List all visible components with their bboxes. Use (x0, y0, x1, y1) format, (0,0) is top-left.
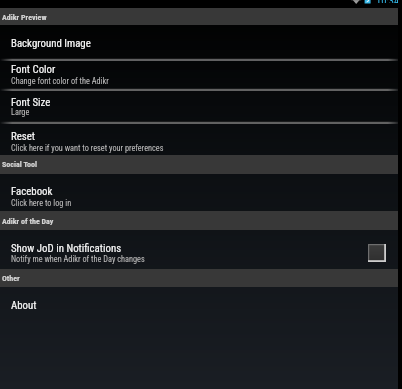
button[interactable] (0, 91, 402, 123)
staticText: About (11, 299, 37, 312)
button[interactable] (0, 174, 402, 211)
button[interactable]: Show Adikr of the Day in notifications (368, 244, 386, 262)
staticText: Social Tool (2, 160, 37, 169)
staticText: Adikr of the Day (2, 217, 54, 226)
staticText: Change font color of the Adikr (11, 76, 109, 86)
staticText: Large (11, 107, 30, 117)
button[interactable] (0, 287, 402, 389)
staticText: Show JoD in Notifications (11, 242, 122, 255)
staticText: Background Image (11, 37, 91, 50)
staticText: Font Size (11, 96, 51, 109)
button[interactable] (0, 229, 402, 269)
staticText: 10:34 (376, 0, 400, 3)
button[interactable] (0, 61, 402, 90)
staticText: Font Color (11, 63, 56, 76)
staticText: Click here if you want to reset your pre… (11, 143, 164, 153)
staticText: Other (2, 274, 20, 283)
staticText: Notify me when Adikr of the Day changes (11, 254, 145, 264)
button[interactable] (0, 124, 402, 155)
staticText: Reset (11, 130, 36, 143)
staticText: Facebook (11, 185, 53, 198)
staticText: Click here to log in (11, 198, 72, 208)
button[interactable] (0, 25, 402, 61)
button[interactable]: Adikr Preview (2, 13, 47, 22)
